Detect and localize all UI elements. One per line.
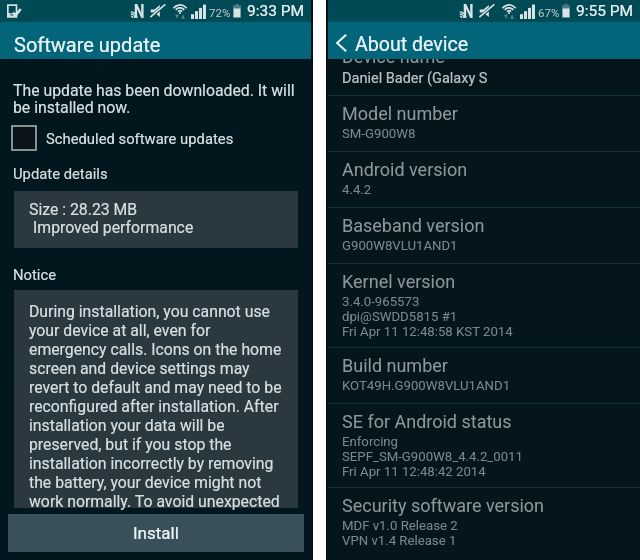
staticText: Device name	[342, 46, 445, 67]
staticText: During installation, you cannot use	[29, 302, 270, 321]
staticText: Update details	[13, 165, 108, 182]
staticText: SEPF_SM-G900W8_4.4.2_0011	[342, 449, 523, 464]
staticText: Kernel version	[342, 271, 456, 292]
staticText: 4.4.2	[342, 182, 372, 197]
staticText: KOT49H.G900W8VLU1AND1	[342, 378, 511, 393]
staticText: the battery, your device might not	[29, 473, 262, 492]
button[interactable]: Build number	[328, 348, 640, 403]
staticText: Model number	[342, 103, 458, 124]
staticText: installation incorrectly by removing	[29, 454, 274, 473]
staticText: Fri Apr 11 12:48:58 KST 2014	[342, 324, 513, 339]
staticText: your device at all, even for	[29, 321, 211, 340]
button[interactable]: SE for Android status	[328, 404, 640, 487]
other: Navigate up	[330, 30, 352, 52]
staticText: emergency calls. Icons on the home	[29, 340, 282, 359]
button[interactable]: Kernel version	[328, 264, 640, 347]
staticText: Software update	[14, 33, 161, 56]
staticText: G900W8VLU1AND1	[342, 238, 458, 253]
button[interactable]: Install	[8, 514, 304, 552]
button[interactable]: Navigate up	[328, 22, 640, 59]
button[interactable]: Android version	[328, 152, 640, 207]
staticText: screen and device settings may	[29, 359, 250, 378]
staticText: Baseband version	[342, 215, 485, 236]
staticText: SM-G900W8	[342, 126, 416, 141]
staticText: Security software version	[342, 495, 545, 516]
button[interactable]: Scheduled software updates	[0, 124, 311, 152]
staticText: 9:33 PM	[247, 2, 305, 20]
button[interactable]: Security software version	[328, 488, 640, 557]
staticText: reconfigured after installation. After	[29, 397, 279, 416]
staticText: VPN v1.4 Release 1	[342, 533, 457, 548]
staticText: work normally. To avoid unexpected	[29, 492, 280, 511]
staticText: Build number	[342, 355, 448, 376]
staticText: Fri Apr 11 12:48:42 2014	[342, 464, 486, 479]
staticText: 72%	[209, 6, 231, 19]
staticText: 67%	[538, 6, 560, 19]
staticText: The update has been downloaded. It will	[13, 81, 295, 100]
staticText: installation your data will be	[29, 416, 225, 435]
staticText: About device	[355, 33, 469, 56]
staticText: MDF v1.0 Release 2	[342, 518, 458, 533]
staticText: Daniel Bader (Galaxy S	[342, 70, 488, 87]
button[interactable]: Device name	[328, 59, 640, 95]
staticText: revert to default and may need to be	[29, 378, 282, 397]
staticText: dpi@SWDD5815 #1	[342, 309, 458, 324]
staticText: be installed now.	[13, 98, 131, 117]
staticText: preserved, but if you stop the	[29, 435, 232, 454]
staticText: Improved performance	[33, 218, 194, 237]
staticText: Enforcing	[342, 434, 399, 449]
staticText: data loss, we recommend that you	[29, 511, 270, 520]
staticText: SE for Android status	[342, 411, 512, 432]
staticText: 9:55 PM	[576, 2, 634, 20]
button[interactable]: Model number	[328, 96, 640, 151]
staticText: Size : 28.23 MB	[29, 200, 138, 219]
staticText: Install	[133, 523, 179, 543]
button[interactable]: Software update	[0, 22, 311, 59]
button[interactable]: Baseband version	[328, 208, 640, 263]
staticText: Android version	[342, 159, 468, 180]
staticText: 3.4.0-965573	[342, 294, 420, 309]
staticText: Notice	[13, 266, 57, 283]
staticText: Scheduled software updates	[46, 130, 234, 147]
